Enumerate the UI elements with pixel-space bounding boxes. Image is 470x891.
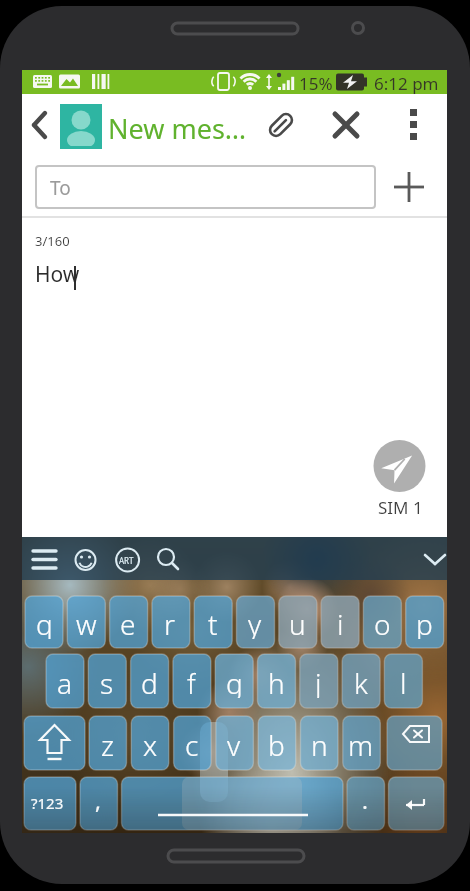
staticText: k xyxy=(354,664,368,698)
staticText: To xyxy=(50,175,71,201)
staticText: x xyxy=(143,726,158,760)
staticText: SIM 1 xyxy=(378,496,423,519)
staticText: p xyxy=(416,605,433,639)
staticText: l xyxy=(400,664,407,698)
staticText: s xyxy=(100,664,114,698)
staticText: q xyxy=(36,605,53,639)
staticText: b xyxy=(268,726,285,760)
staticText: t xyxy=(208,605,218,639)
staticText: ?123 xyxy=(31,793,64,813)
staticText: m xyxy=(348,726,374,760)
staticText: h xyxy=(268,664,285,698)
staticText: n xyxy=(311,726,328,760)
staticText: i xyxy=(337,605,344,639)
staticText: ART xyxy=(119,555,134,566)
staticText: f xyxy=(187,664,196,698)
staticText: 3/160 xyxy=(35,232,70,250)
staticText: a xyxy=(57,664,73,698)
staticText: 15% xyxy=(299,72,333,95)
staticText: o xyxy=(374,605,391,639)
staticText: u xyxy=(289,605,306,639)
staticText: w xyxy=(76,605,97,639)
staticText: z xyxy=(101,726,114,760)
staticText: d xyxy=(141,664,158,698)
staticText: c xyxy=(185,726,199,760)
staticText: . xyxy=(362,785,368,815)
staticText: g xyxy=(226,664,243,698)
staticText: r xyxy=(164,605,176,639)
staticText: y xyxy=(248,605,262,639)
staticText: e xyxy=(120,605,136,639)
staticText: v xyxy=(227,726,241,760)
staticText: How xyxy=(35,260,80,289)
staticText: j xyxy=(315,664,322,698)
staticText: 6:12 pm xyxy=(374,72,439,95)
staticText: New mes… xyxy=(108,110,247,147)
staticText: , xyxy=(95,785,101,815)
